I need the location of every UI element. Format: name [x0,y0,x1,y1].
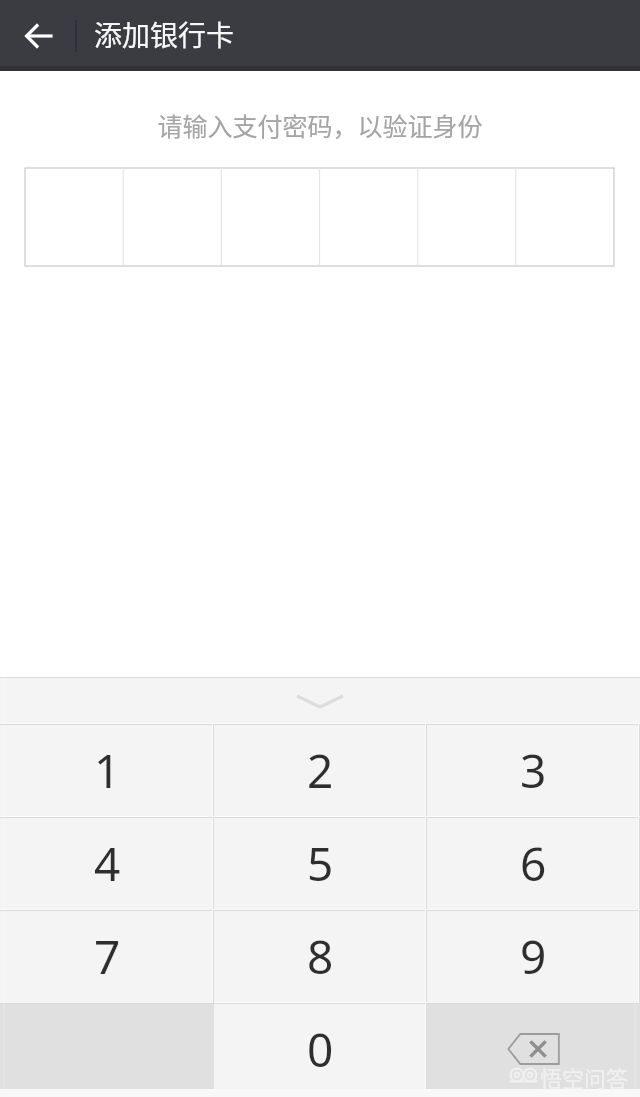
button[interactable]: Back [8,6,66,66]
button[interactable]: 7 [0,910,214,1003]
button[interactable]: 5 [214,817,427,910]
staticText: 2 [307,739,334,802]
staticText: 0 [307,1018,334,1081]
button[interactable]: 9 [427,910,640,1003]
staticText: 添加银行卡 [94,14,235,55]
button[interactable]: 6 [427,817,640,910]
button[interactable]: Delete [427,1003,640,1089]
staticText: 4 [94,832,121,895]
staticText: 悟空问答 [540,1061,629,1093]
staticText: 1 [94,739,121,802]
button[interactable]: 4 [0,817,214,910]
button[interactable]: 1 [0,724,214,817]
staticText: 8 [307,925,334,988]
button[interactable]: 3 [427,724,640,817]
button[interactable]: 0 [214,1003,427,1089]
staticText: 6 [520,832,547,895]
staticText: 9 [520,925,547,988]
staticText: 5 [307,832,334,895]
button[interactable]: Password field [25,168,614,266]
button[interactable]: 8 [214,910,427,1003]
button[interactable]: Hide keyboard [0,677,640,724]
staticText: 请输入支付密码，以验证身份 [0,107,640,143]
staticText: 3 [520,739,547,802]
button[interactable]: 2 [214,724,427,817]
staticText: 7 [94,925,121,988]
